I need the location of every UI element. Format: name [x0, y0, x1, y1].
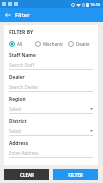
staticText: 16:56 [90, 2, 101, 7]
button[interactable]: Dealer [9, 74, 93, 92]
staticText: Dealer [76, 41, 90, 47]
button[interactable]: CLEAR [4, 169, 49, 180]
button[interactable]: District [9, 118, 93, 136]
staticText: Enter Address [9, 150, 93, 156]
staticText: Search Dealer [9, 84, 93, 90]
staticText: Staff Name [9, 52, 36, 59]
staticText: Address [9, 140, 29, 147]
button[interactable]: Region [9, 96, 93, 114]
button[interactable]: Staff Name [9, 52, 93, 70]
button[interactable]: Address [9, 140, 93, 158]
button[interactable]: All [9, 41, 35, 47]
staticText: Search Staff [9, 62, 93, 68]
staticText: All [17, 41, 23, 47]
staticText: Select [9, 106, 90, 112]
button[interactable]: Dealer [68, 41, 90, 47]
button[interactable]: Back [3, 10, 13, 20]
staticText: Mechanic [43, 41, 64, 47]
staticText: District [9, 118, 27, 125]
staticText: Region [9, 96, 26, 103]
staticText: FILTER BY [9, 29, 34, 36]
staticText: Filter [15, 11, 30, 19]
staticText: Dealer [9, 74, 25, 81]
button[interactable]: Mechanic [35, 41, 68, 47]
staticText: FILTER [68, 172, 83, 178]
staticText: Select [9, 128, 90, 134]
button[interactable]: FILTER [53, 169, 98, 180]
staticText: CLEAR [20, 172, 34, 178]
